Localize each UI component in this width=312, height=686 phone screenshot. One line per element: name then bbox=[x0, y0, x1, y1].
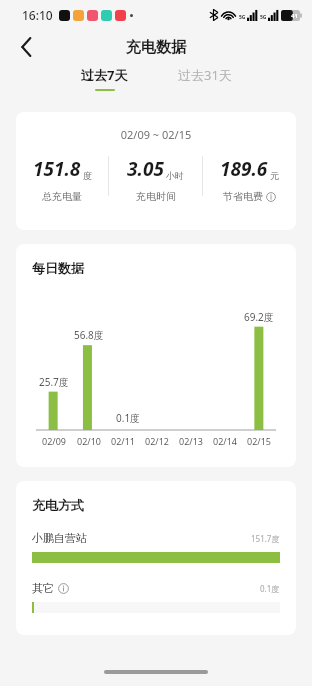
staticText: 5G bbox=[239, 14, 246, 21]
staticText: 02/10 bbox=[77, 435, 101, 447]
staticText: 过去7天 bbox=[81, 66, 128, 84]
button[interactable]: 小鹏自营站 bbox=[32, 531, 280, 563]
staticText: 3.05 bbox=[127, 156, 164, 182]
staticText: 151.7度 bbox=[251, 533, 280, 544]
staticText: 25.7度 bbox=[39, 375, 69, 389]
button[interactable]: Info bbox=[58, 583, 69, 594]
staticText: 充电时间 bbox=[136, 190, 176, 203]
staticText: 0.1度 bbox=[260, 583, 280, 594]
staticText: 度 bbox=[83, 170, 92, 181]
button[interactable]: 过去31天 bbox=[172, 64, 238, 93]
staticText: 41 bbox=[291, 12, 298, 20]
staticText: 小时 bbox=[166, 170, 184, 181]
staticText: 充电方式 bbox=[32, 497, 84, 513]
staticText: 151.8 bbox=[33, 156, 81, 182]
staticText: 每日数据 bbox=[32, 260, 84, 276]
staticText: 02/15 bbox=[247, 435, 271, 447]
staticText: 小鹏自营站 bbox=[32, 531, 87, 545]
staticText: 02/13 bbox=[179, 435, 203, 447]
staticText: 充电数据 bbox=[126, 38, 186, 57]
button[interactable]: 其它 bbox=[32, 581, 280, 613]
staticText: 总充电量 bbox=[42, 190, 82, 203]
staticText: 02/14 bbox=[213, 435, 237, 447]
staticText: 02/09 bbox=[42, 435, 66, 447]
staticText: 56.8度 bbox=[74, 328, 104, 342]
staticText: 69.2度 bbox=[244, 310, 274, 324]
staticText: 过去31天 bbox=[178, 66, 232, 84]
staticText: 02/11 bbox=[111, 435, 135, 447]
staticText: 189.6 bbox=[220, 156, 268, 182]
button[interactable]: 过去7天 bbox=[75, 64, 134, 93]
staticText: 0.1度 bbox=[116, 411, 141, 425]
staticText: 02/12 bbox=[145, 435, 169, 447]
button[interactable]: Info bbox=[266, 192, 276, 202]
staticText: 元 bbox=[270, 170, 279, 181]
staticText: 16:10 bbox=[22, 7, 53, 23]
button[interactable]: Back bbox=[8, 30, 44, 64]
staticText: 02/09 ~ 02/15 bbox=[16, 127, 296, 142]
staticText: 5G bbox=[260, 14, 267, 21]
staticText: 其它 bbox=[32, 581, 54, 595]
staticText: 节省电费 bbox=[223, 190, 263, 203]
